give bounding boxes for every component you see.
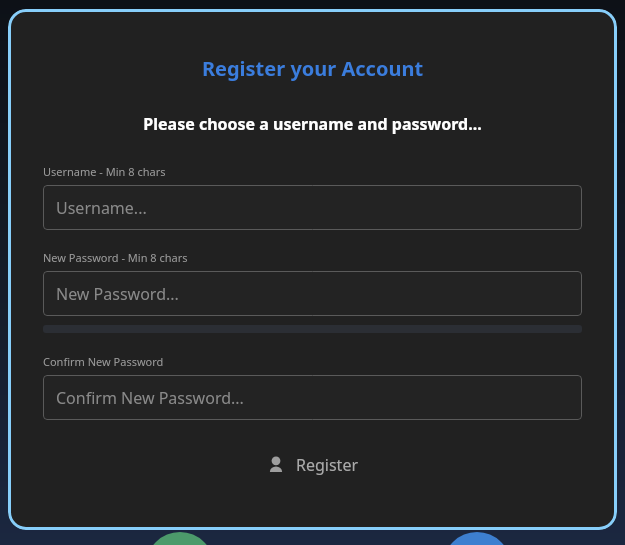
staticText: Confirm New Password... (56, 387, 244, 409)
button[interactable]: Register (253, 448, 373, 482)
button[interactable]: New Password... (43, 271, 582, 316)
staticText: Username... (56, 197, 147, 219)
staticText: Register your Account (8, 55, 617, 82)
staticText: Please choose a username and password... (8, 113, 617, 135)
staticText: New Password... (56, 283, 179, 305)
other: Register (267, 456, 285, 474)
staticText: New Password - Min 8 chars (43, 250, 188, 265)
button[interactable]: Username... (43, 185, 582, 230)
staticText: Confirm New Password (43, 354, 164, 369)
button[interactable]: Confirm New Password... (43, 375, 582, 420)
staticText: Register (296, 454, 359, 476)
staticText: Username - Min 8 chars (43, 164, 166, 179)
